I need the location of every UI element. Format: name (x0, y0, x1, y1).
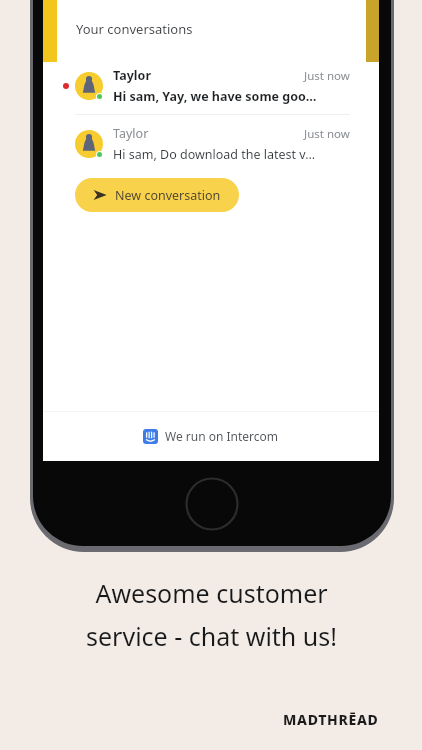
button[interactable]: Taylor (57, 57, 366, 114)
other: Intercom (143, 429, 158, 444)
staticText: Taylor (113, 67, 151, 84)
staticText: service - chat with us! (86, 619, 337, 653)
staticText: Just now (304, 68, 350, 84)
staticText: New conversation (115, 187, 221, 204)
button[interactable]: Taylor (57, 115, 366, 172)
staticText: Your conversations (76, 20, 193, 38)
staticText: Awesome customer (95, 576, 328, 610)
staticText: Hi sam, Do download the latest v… (113, 146, 316, 163)
staticText: We run on Intercom (165, 428, 279, 444)
staticText: Taylor (113, 125, 149, 142)
staticText: Hi sam, Yay, we have some goo… (113, 88, 317, 105)
button[interactable]: Intercom (137, 424, 285, 448)
staticText: Just now (304, 126, 350, 142)
staticText: MADTHRĒAD (283, 710, 379, 729)
button[interactable]: New conversation (75, 178, 239, 212)
